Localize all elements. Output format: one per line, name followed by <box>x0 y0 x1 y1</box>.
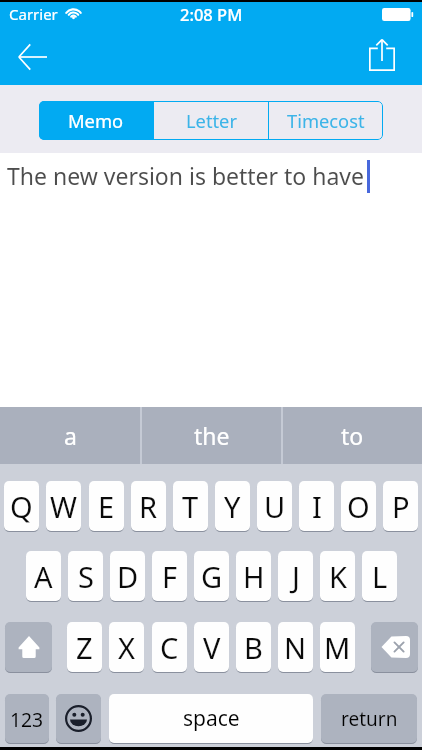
staticText: 123 <box>10 706 44 732</box>
staticText: 2:08 PM <box>180 3 243 25</box>
staticText: The new version is better to have <box>7 160 365 191</box>
button[interactable]: Timecost <box>269 101 383 140</box>
staticText: R <box>139 487 158 526</box>
button[interactable]: Y <box>215 481 250 531</box>
staticText: Letter <box>186 108 237 133</box>
staticText: space <box>183 704 240 733</box>
button[interactable]: C <box>152 622 187 672</box>
button[interactable]: return <box>321 694 417 743</box>
button[interactable]: Backspace <box>371 622 418 672</box>
button[interactable]: U <box>257 481 292 531</box>
button[interactable]: V <box>194 622 229 672</box>
staticText: I <box>312 487 322 526</box>
button[interactable]: R <box>131 481 166 531</box>
button[interactable]: Z <box>67 622 102 672</box>
staticText: C <box>160 628 179 667</box>
staticText: W <box>50 487 77 526</box>
button[interactable]: space <box>109 694 313 743</box>
button[interactable]: Letter <box>154 101 268 140</box>
button[interactable]: W <box>46 481 81 531</box>
button[interactable]: 123 <box>5 694 49 743</box>
button[interactable]: A <box>26 551 61 601</box>
staticText: U <box>264 487 286 526</box>
staticText: G <box>201 557 223 596</box>
button[interactable]: K <box>320 551 355 601</box>
staticText: P <box>392 487 410 526</box>
button[interactable]: O <box>341 481 376 531</box>
button[interactable]: Shift <box>5 622 52 672</box>
button[interactable]: H <box>236 551 271 601</box>
staticText: Y <box>224 487 241 526</box>
button[interactable]: N <box>278 622 313 672</box>
button[interactable]: F <box>152 551 187 601</box>
staticText: Memo <box>68 108 124 133</box>
button[interactable]: P <box>383 481 418 531</box>
button[interactable]: the <box>142 407 281 464</box>
button[interactable]: D <box>110 551 145 601</box>
button[interactable]: L <box>362 551 397 601</box>
staticText: K <box>329 557 347 596</box>
staticText: L <box>372 557 388 596</box>
button[interactable]: Emoji <box>56 694 101 743</box>
staticText: Carrier <box>9 4 58 24</box>
button[interactable]: B <box>236 622 271 672</box>
button[interactable]: Share <box>356 28 422 85</box>
staticText: A <box>34 557 53 596</box>
staticText: T <box>182 487 199 526</box>
staticText: N <box>284 628 307 667</box>
staticText: Z <box>76 628 93 667</box>
button[interactable]: T <box>173 481 208 531</box>
button[interactable]: S <box>68 551 103 601</box>
button[interactable]: to <box>283 407 422 464</box>
staticText: to <box>341 420 364 451</box>
button[interactable]: J <box>278 551 313 601</box>
staticText: E <box>98 487 115 526</box>
staticText: H <box>243 557 265 596</box>
button[interactable]: E <box>89 481 124 531</box>
button[interactable]: Memo <box>39 101 153 140</box>
staticText: the <box>194 420 230 451</box>
button[interactable]: Q <box>4 481 39 531</box>
staticText: X <box>118 628 135 667</box>
button[interactable]: G <box>194 551 229 601</box>
staticText: Q <box>10 487 33 526</box>
staticText: D <box>117 557 139 596</box>
staticText: B <box>244 628 263 667</box>
staticText: J <box>292 557 300 596</box>
button[interactable]: Back <box>0 28 66 85</box>
button[interactable]: I <box>299 481 334 531</box>
staticText: a <box>64 420 77 451</box>
staticText: V <box>203 628 221 667</box>
staticText: M <box>324 628 351 667</box>
button[interactable]: M <box>320 622 355 672</box>
staticText: return <box>341 706 398 732</box>
staticText: Timecost <box>287 108 365 133</box>
staticText: O <box>347 487 370 526</box>
button[interactable]: X <box>109 622 144 672</box>
button[interactable]: a <box>0 407 140 464</box>
staticText: S <box>78 557 94 596</box>
staticText: F <box>162 557 178 596</box>
